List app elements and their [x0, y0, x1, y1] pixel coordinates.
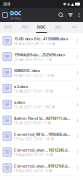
- button[interactable]: a.docx: [0, 97, 83, 112]
- button[interactable]: PPT: [66, 22, 83, 33]
- button[interactable]: 5086DOC.docx: [0, 65, 83, 81]
- button[interactable]: Select all: [0, 9, 10, 20]
- staticText: 19 Jun 2021 14:31 · 18 kB: [14, 137, 54, 141]
- staticText: DOC: [37, 24, 46, 30]
- staticText: Converted_88 Sc...1896456.docx: [14, 131, 70, 137]
- button[interactable]: More options: [75, 8, 83, 22]
- staticText: Admin Panel Sc...84794111.docx: [14, 115, 70, 121]
- staticText: 19 Aug 2021 21:01 · 6 kB: [14, 153, 53, 157]
- staticText: PPT: [72, 24, 78, 30]
- staticText: 04 Apr 2021 20:76 · 14 kB: [14, 74, 54, 77]
- staticText: 18 Mar 2021 13:01 · 18 kB: [14, 90, 53, 93]
- staticText: a.docx: [14, 100, 25, 105]
- staticText: 1994bb269-dsc...2525696.docx: [14, 52, 65, 57]
- staticText: DOC: [10, 10, 21, 17]
- staticText: 18 Jan 2021 09:41 · 5 kB: [14, 121, 51, 125]
- staticText: DOC: [4, 24, 13, 30]
- button[interactable]: Filter: [66, 8, 75, 22]
- button[interactable]: a 2.docx: [0, 81, 83, 97]
- staticText: 39 Files: [10, 17, 21, 20]
- button[interactable]: Converted_skan...18212345.docx: [0, 144, 83, 160]
- button[interactable]: XLS: [50, 22, 66, 33]
- staticText: 12 Jan 2021 12:41 · 162 kB: [14, 105, 55, 109]
- staticText: a 2.docx: [14, 84, 28, 89]
- staticText: ▲: [71, 2, 74, 6]
- staticText: 5086DOC.docx: [14, 68, 40, 73]
- button[interactable]: Search: [56, 8, 66, 22]
- button[interactable]: Admin Panel Sc...84794111.docx: [0, 112, 83, 128]
- button[interactable]: DOC: [0, 22, 17, 33]
- staticText: 04 Aug 2021 00:13 · 12 kB: [14, 42, 55, 45]
- staticText: PDF: [21, 24, 28, 30]
- staticText: 15.6B docx file...41150888.docx: [14, 36, 68, 41]
- button[interactable]: Converted_skan...87812160.docx: [0, 160, 83, 176]
- button[interactable]: 1994bb269-dsc...2525696.docx: [0, 49, 83, 65]
- staticText: XLS: [55, 24, 61, 30]
- staticText: Converted_skan...87812160.docx: [14, 163, 70, 168]
- button[interactable]: DOC: [33, 22, 50, 33]
- button[interactable]: 15.6B docx file...41150888.docx: [0, 33, 83, 49]
- staticText: 19 Sep 2021 23:10 · 6 kB: [14, 169, 52, 173]
- button[interactable]: PDF: [17, 22, 33, 33]
- staticText: 29 Apr 2021 09:13 · 7 kB: [14, 58, 52, 61]
- staticText: ✱: [63, 2, 66, 6]
- button[interactable]: Converted_88 Sc...1896456.docx: [0, 128, 83, 144]
- staticText: Converted_skan...18212345.docx: [14, 147, 70, 153]
- staticText: ◈: [67, 2, 70, 6]
- staticText: 20:8: [3, 1, 10, 7]
